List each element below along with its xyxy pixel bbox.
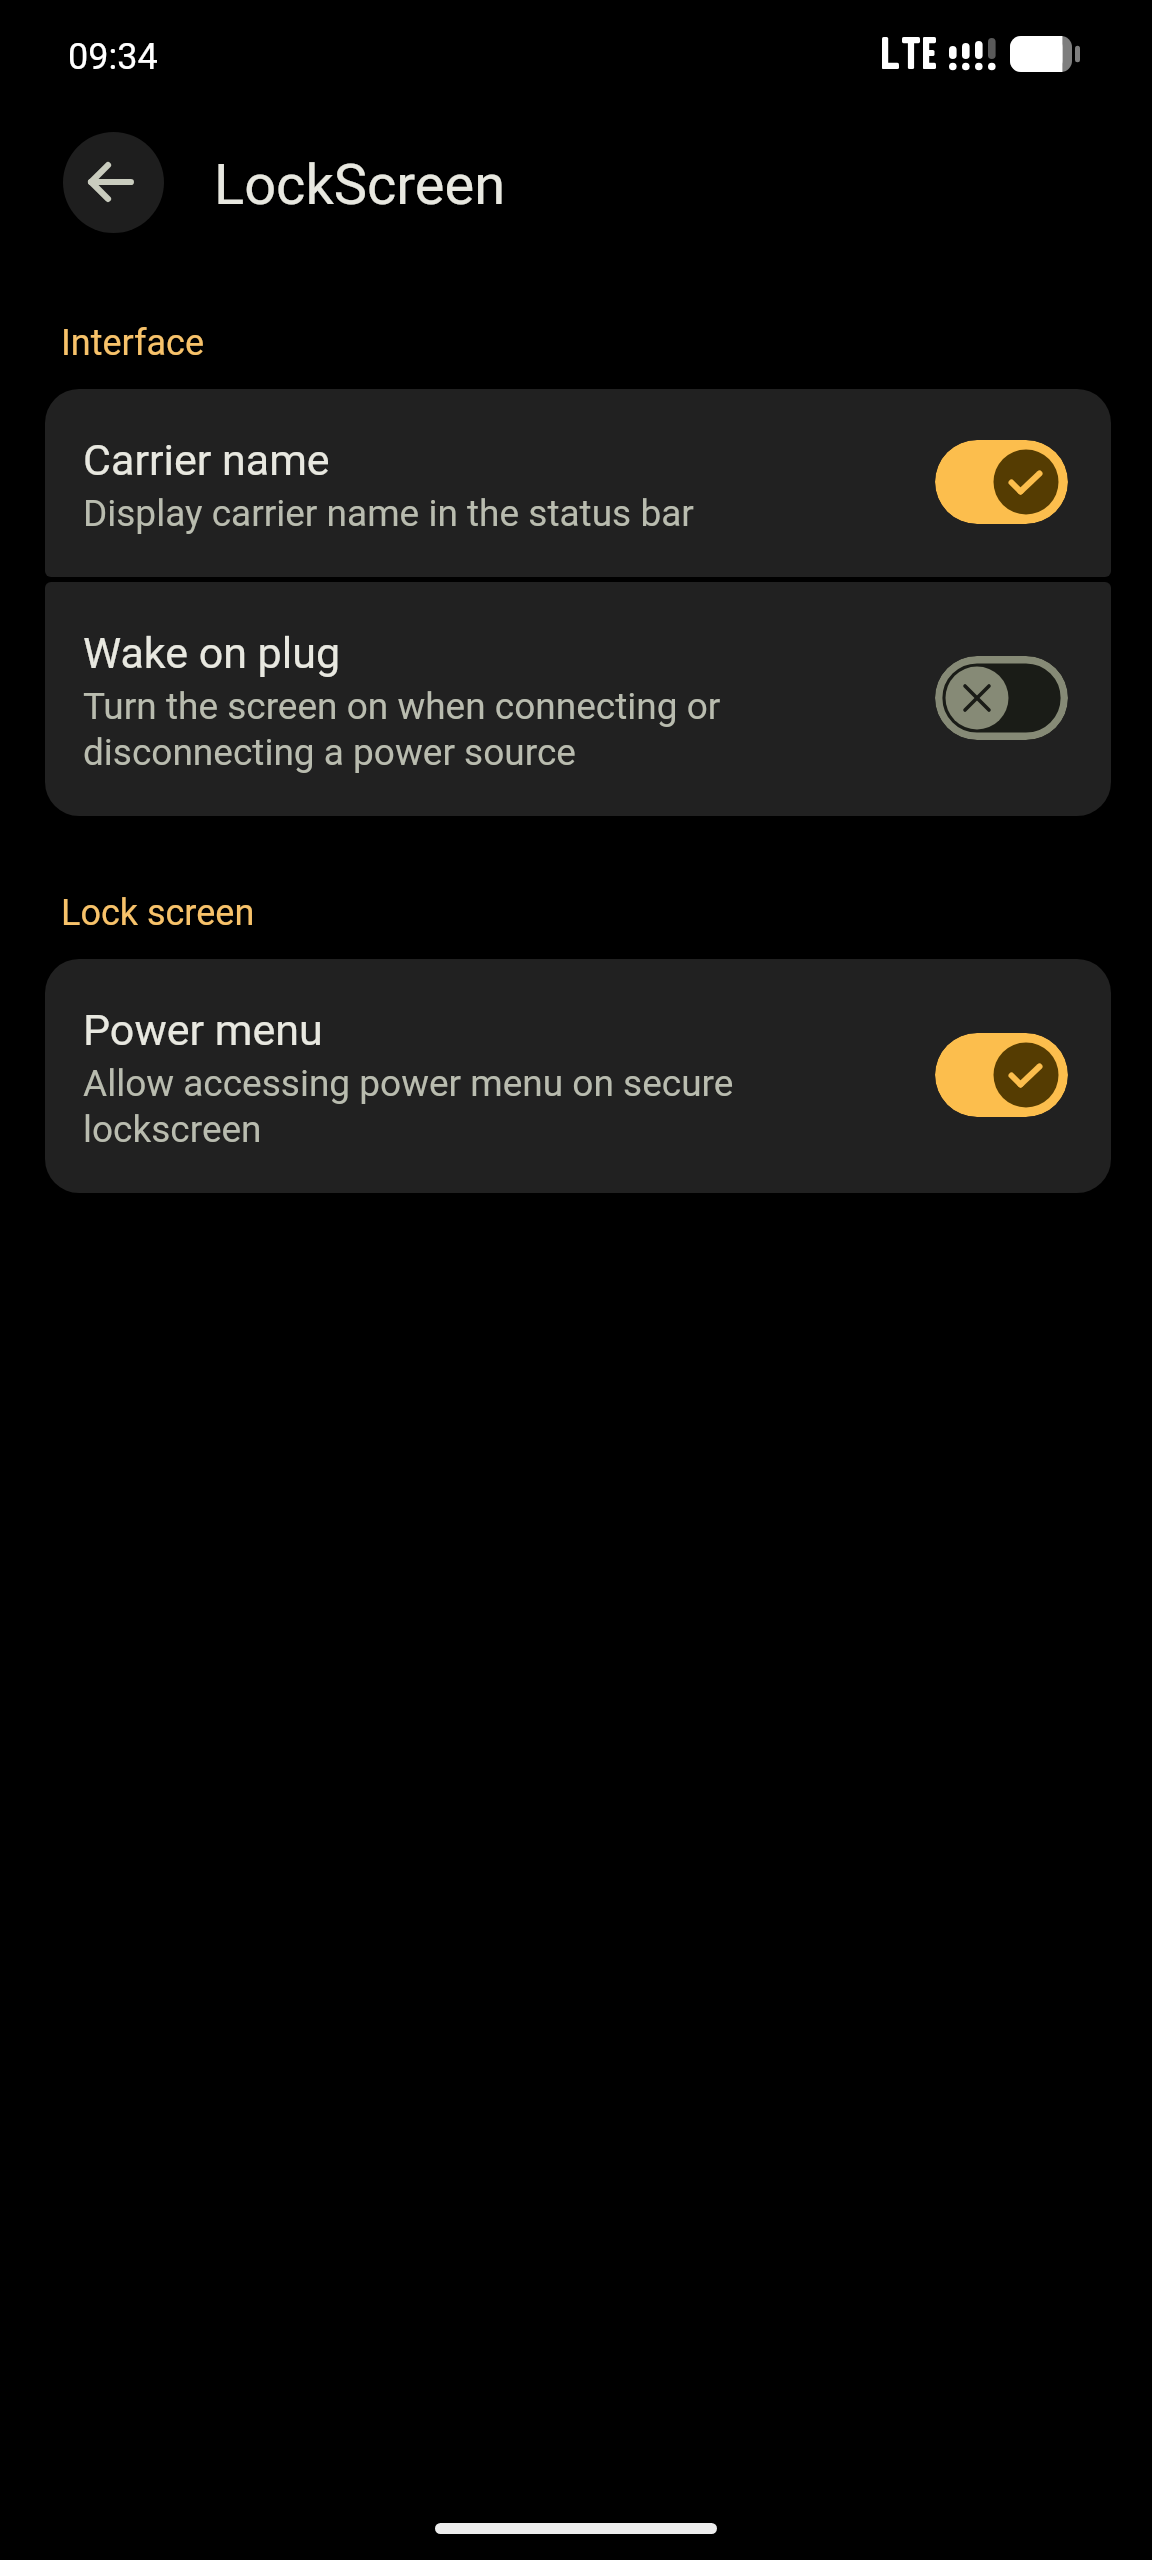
staticText: Power menu bbox=[83, 1005, 323, 1055]
button[interactable]: Back bbox=[63, 132, 164, 233]
button[interactable]: Power menu bbox=[45, 959, 1111, 1193]
staticText: Wake on plug bbox=[83, 628, 341, 678]
staticText: Allow accessing power menu on secure loc… bbox=[83, 1062, 890, 1151]
button[interactable]: Wake on plug, off bbox=[935, 656, 1068, 740]
button[interactable]: Wake on plug bbox=[45, 582, 1111, 816]
staticText: Carrier name bbox=[83, 435, 330, 485]
button[interactable]: Power menu, on bbox=[935, 1033, 1068, 1117]
staticText: LockScreen bbox=[214, 152, 506, 218]
staticText: Display carrier name in the status bar bbox=[83, 492, 694, 535]
staticText: Turn the screen on when connecting or di… bbox=[83, 685, 890, 774]
button[interactable]: Carrier name, on bbox=[935, 440, 1068, 524]
staticText: Interface bbox=[61, 322, 205, 364]
staticText: Lock screen bbox=[61, 892, 255, 934]
button[interactable]: Carrier name bbox=[45, 389, 1111, 577]
staticText: 09:34 bbox=[68, 36, 158, 78]
